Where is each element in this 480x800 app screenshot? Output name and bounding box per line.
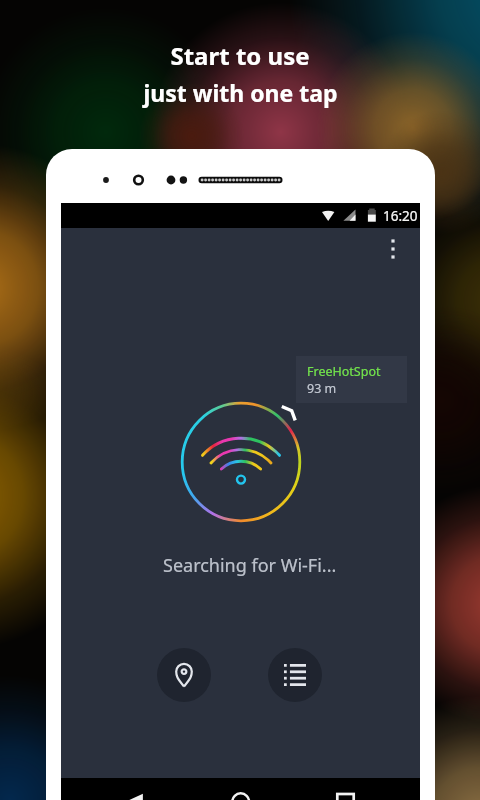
button[interactable]: FreeHotSpot xyxy=(296,356,407,403)
staticText: 16:20 xyxy=(383,207,418,225)
staticText: Start to use xyxy=(170,39,310,72)
button[interactable]: Map xyxy=(157,648,211,702)
staticText: just with one tap xyxy=(143,77,338,108)
staticText: FreeHotSpot xyxy=(307,363,381,380)
staticText: Searching for Wi-Fi... xyxy=(163,553,337,578)
staticText: 93 m xyxy=(307,380,337,397)
button[interactable]: List xyxy=(268,648,322,702)
button[interactable]: More options xyxy=(374,228,412,270)
